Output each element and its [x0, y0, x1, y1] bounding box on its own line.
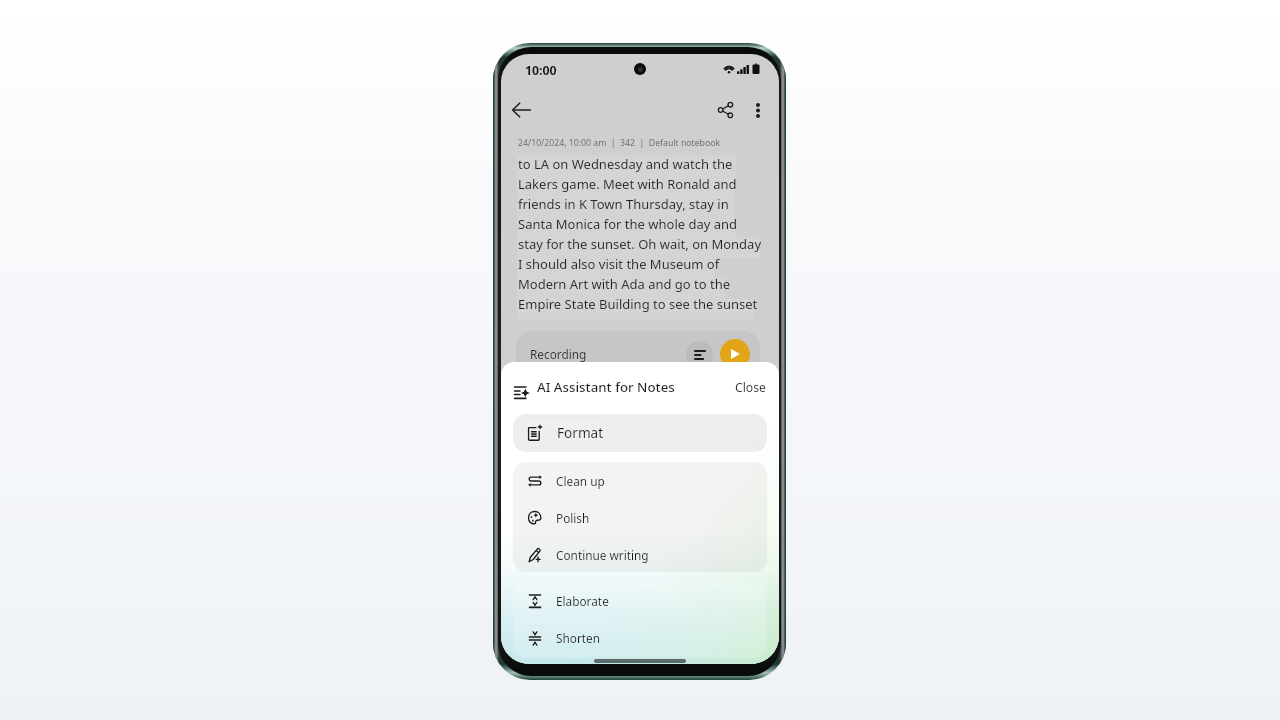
- staticText: Elaborate: [556, 593, 609, 609]
- button[interactable]: Continue writing: [513, 536, 767, 572]
- staticText: 24/10/2024, 10:00 am | 342 | Default not…: [518, 137, 721, 149]
- button[interactable]: Play recording: [720, 339, 750, 369]
- button[interactable]: Clean up: [513, 462, 767, 499]
- staticText: Clean up: [556, 473, 605, 489]
- staticText: Recording: [530, 346, 587, 362]
- button[interactable]: Share: [711, 96, 739, 124]
- staticText: Close: [735, 379, 766, 396]
- staticText: Shorten: [556, 630, 600, 646]
- button[interactable]: Recording: [516, 331, 760, 377]
- staticText: Continue writing: [556, 547, 649, 563]
- button[interactable]: Close: [729, 374, 772, 401]
- button[interactable]: Format: [513, 414, 767, 451]
- button[interactable]: More options: [744, 96, 772, 124]
- button[interactable]: Polish: [513, 499, 767, 536]
- button[interactable]: Elaborate: [513, 582, 767, 619]
- staticText: to LA on Wednesday and watch the Lakers …: [518, 155, 762, 313]
- staticText: AI Assistant for Notes: [537, 378, 675, 396]
- staticText: 10:00: [525, 62, 557, 79]
- staticText: Format: [557, 423, 604, 442]
- other: AI assistant: [514, 375, 550, 400]
- button[interactable]: Transcript: [686, 341, 713, 368]
- button[interactable]: Shorten: [513, 619, 767, 656]
- button[interactable]: Back: [507, 96, 535, 124]
- staticText: Polish: [556, 510, 590, 526]
